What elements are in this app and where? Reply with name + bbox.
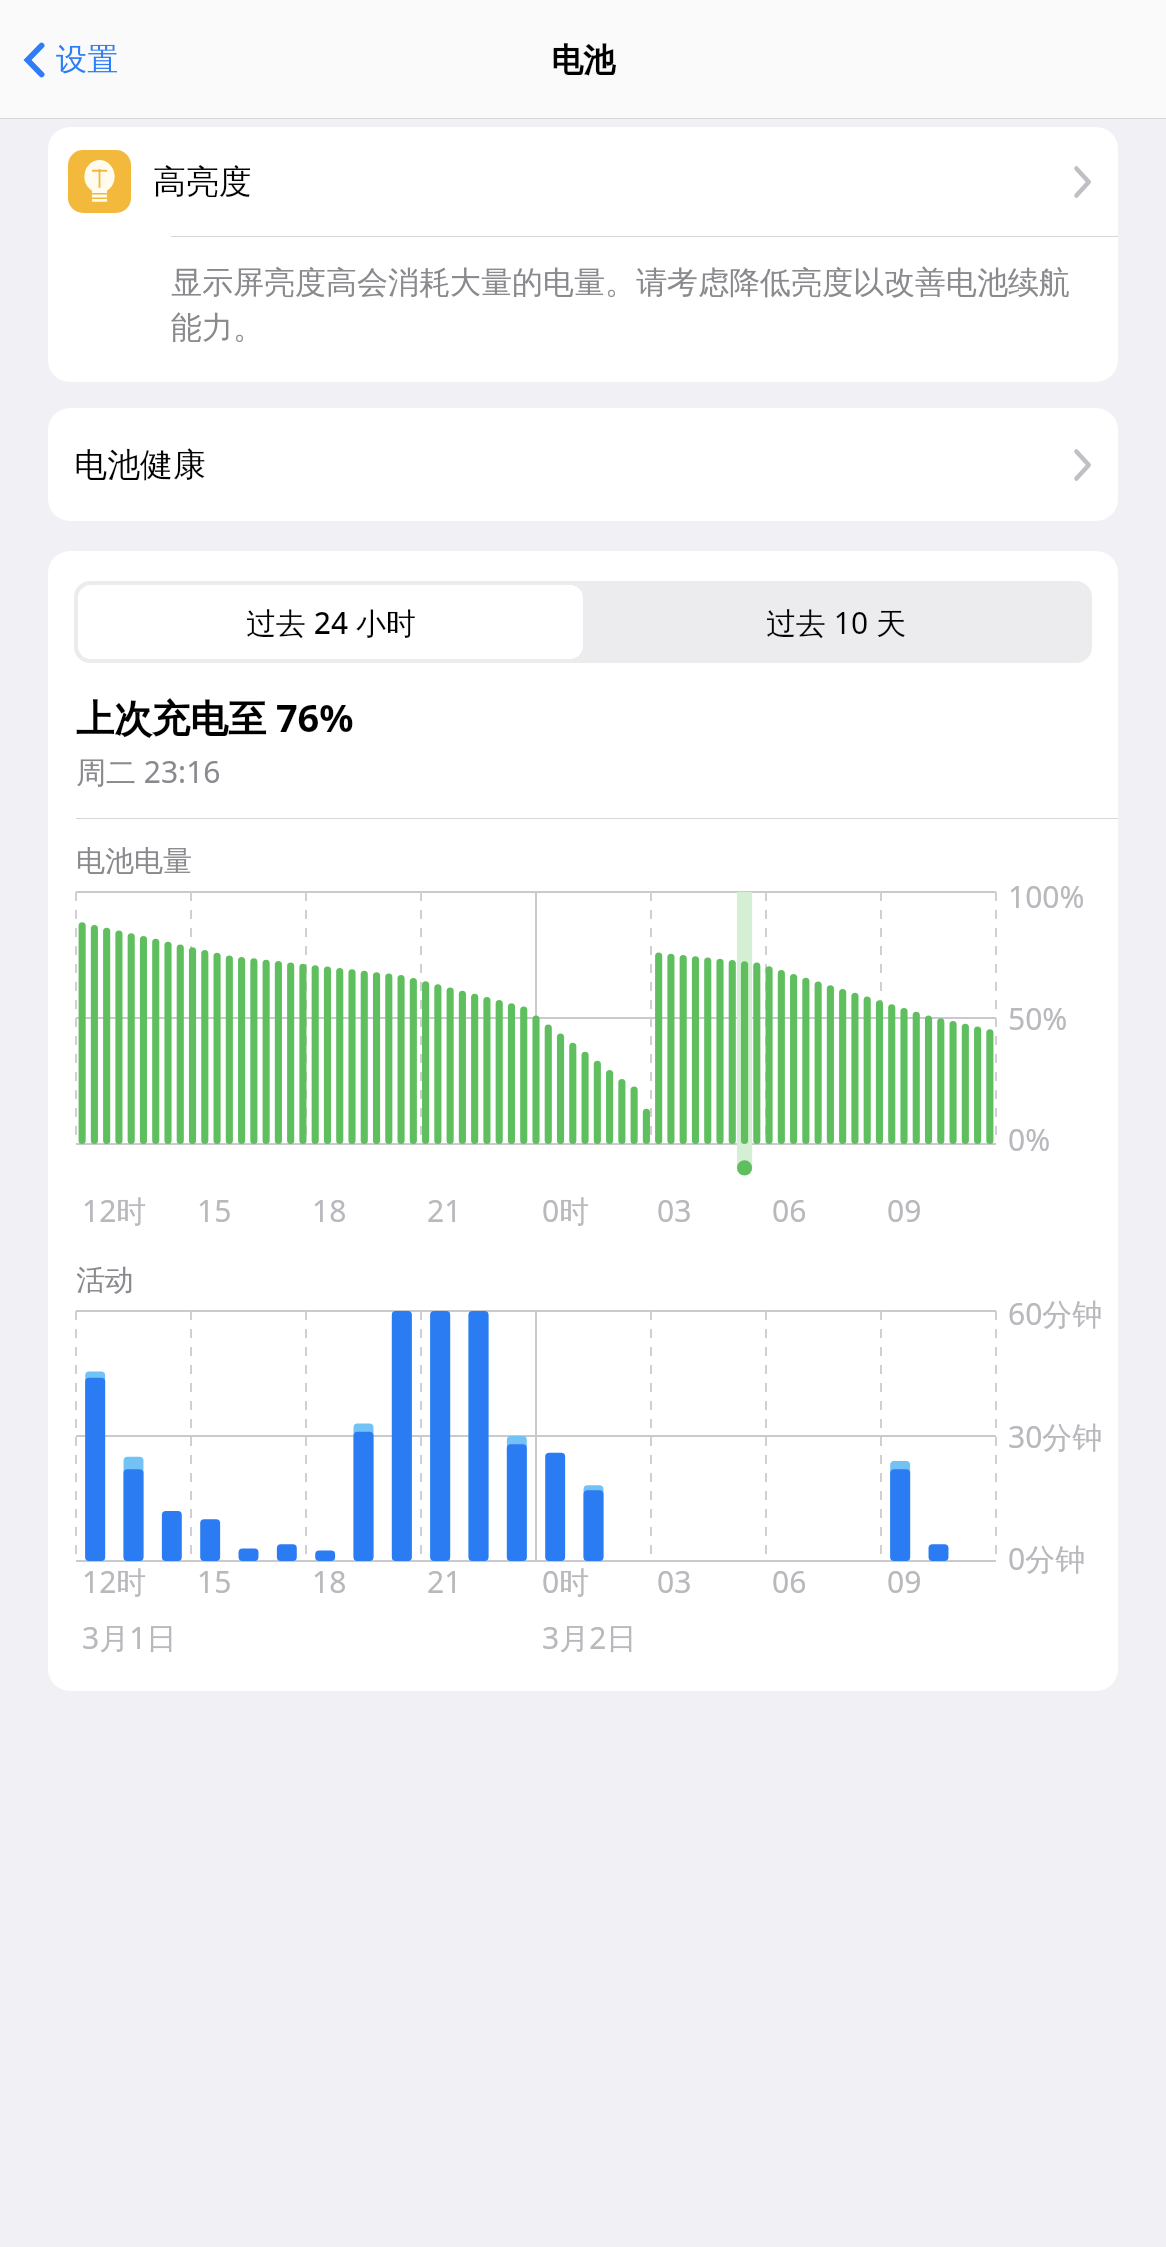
staticText: 50% (1008, 998, 1068, 1039)
staticText: 09 (887, 1561, 922, 1602)
staticText: 过去 10 天 (766, 602, 906, 643)
staticText: 03 (657, 1190, 692, 1231)
staticText: 高亮度 (153, 161, 252, 203)
staticText: 周二 23:16 (76, 751, 221, 792)
staticText: 过去 24 小时 (246, 602, 416, 643)
button[interactable]: 电池健康 (48, 408, 1118, 521)
staticText: 显示屏亮度高会消耗大量的电量。请考虑降低亮度以改善电池续航能力。 (171, 263, 1076, 348)
staticText: 电池电量 (76, 843, 192, 880)
staticText: 15 (197, 1190, 232, 1231)
staticText: 60分钟 (1008, 1293, 1103, 1334)
button[interactable]: 过去 10 天 (583, 585, 1088, 659)
staticText: 0时 (542, 1561, 590, 1602)
other: More (1072, 165, 1092, 199)
staticText: 30分钟 (1008, 1416, 1103, 1457)
staticText: 15 (197, 1561, 232, 1602)
staticText: 12时 (82, 1190, 147, 1231)
staticText: 3月2日 (542, 1617, 637, 1658)
staticText: 0分钟 (1008, 1538, 1086, 1579)
staticText: 18 (312, 1561, 347, 1602)
staticText: 0% (1008, 1119, 1051, 1160)
button[interactable]: 设置 (18, 34, 124, 85)
staticText: 上次充电至 76% (76, 691, 354, 743)
staticText: 设置 (56, 40, 118, 79)
staticText: 3月1日 (82, 1617, 177, 1658)
staticText: 0时 (542, 1190, 590, 1231)
staticText: 活动 (76, 1262, 134, 1299)
staticText: 21 (427, 1561, 462, 1602)
staticText: 06 (772, 1190, 807, 1231)
staticText: 03 (657, 1561, 692, 1602)
staticText: 18 (312, 1190, 347, 1231)
staticText: 06 (772, 1561, 807, 1602)
staticText: 21 (427, 1190, 462, 1231)
staticText: 电池健康 (74, 444, 1072, 486)
staticText: 12时 (82, 1561, 147, 1602)
staticText: 电池 (551, 40, 615, 80)
button[interactable]: 过去 24 小时 (78, 585, 583, 659)
other: More (1072, 448, 1092, 482)
staticText: 100% (1008, 876, 1085, 917)
button[interactable]: 高亮度 (48, 127, 1118, 236)
staticText: 09 (887, 1190, 922, 1231)
